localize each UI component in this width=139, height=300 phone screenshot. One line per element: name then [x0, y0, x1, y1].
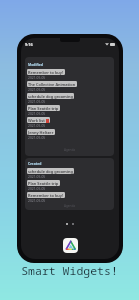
staticText: 2021-05-05 [28, 75, 46, 79]
button[interactable]: Remember to buy! [27, 192, 65, 202]
staticText: Created [28, 161, 42, 166]
staticText: 2021-05-05 [28, 174, 46, 178]
button[interactable]: Work list [27, 117, 50, 127]
button[interactable]: Plan Seattle trip [27, 105, 60, 115]
button[interactable]: schedule dog grooming [27, 93, 74, 103]
staticText: 2021-05-05 [28, 186, 46, 190]
button[interactable]: Plan Seattle trip [27, 180, 60, 190]
staticText: Agenda [27, 148, 112, 152]
staticText: 2021-05-05 [28, 135, 46, 139]
staticText: Plan Seattle trip [28, 181, 59, 186]
staticText: 2021-05-05 [28, 111, 46, 115]
staticText: 2021-05-05 [28, 198, 46, 202]
staticText: Jenny Heltzer [28, 130, 54, 135]
staticText: Agenda [27, 204, 112, 208]
button[interactable]: Jenny Heltzer [27, 129, 55, 139]
staticText: Smart Widgets! [0, 263, 139, 279]
staticText: Plan Seattle trip [28, 106, 59, 111]
staticText: 2021-05-05 [28, 87, 46, 91]
staticText: Remember to buy! [28, 70, 64, 75]
staticText: 9:16 [25, 42, 33, 47]
staticText: 2021-05-05 [28, 123, 46, 127]
button[interactable]: Remember to buy! [27, 69, 65, 79]
staticText: Modified [28, 62, 43, 67]
staticText: 2021-05-05 [28, 99, 46, 103]
button[interactable]: The Collective Animation [27, 81, 77, 91]
staticText: Work list [28, 118, 45, 123]
button[interactable]: Open app [63, 238, 78, 253]
button[interactable]: schedule dog grooming [27, 168, 74, 178]
staticText: Remember to buy! [28, 193, 64, 198]
staticText: The Collective Animation [28, 82, 76, 87]
staticText: schedule dog grooming [28, 94, 73, 99]
staticText: schedule dog grooming [28, 169, 73, 174]
